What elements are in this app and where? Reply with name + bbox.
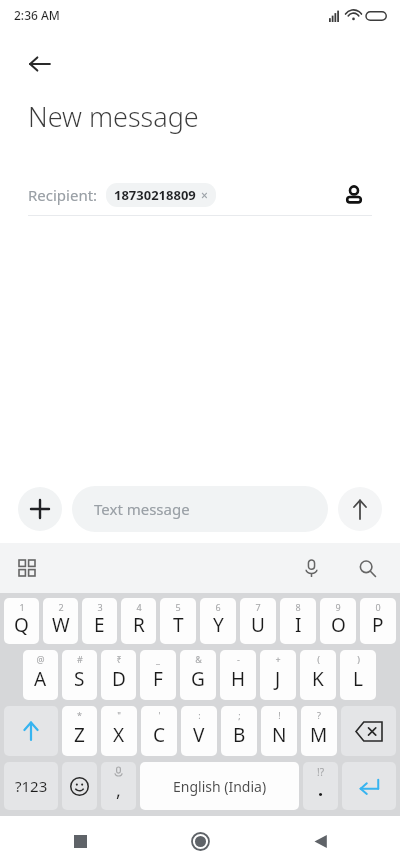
staticText: _ [156, 653, 160, 665]
button[interactable]: Search [350, 551, 384, 585]
button[interactable]: ₹ [101, 650, 136, 700]
staticText: * [77, 709, 82, 721]
button[interactable]: # [62, 650, 97, 700]
staticText: . [318, 777, 324, 802]
button[interactable]: Recents [60, 821, 100, 861]
staticText: E [94, 612, 105, 638]
button[interactable]: 7 [240, 598, 276, 644]
button[interactable]: 9 [320, 598, 356, 644]
button[interactable]: * [62, 706, 97, 756]
staticText: " [117, 709, 121, 721]
staticText: 5 [175, 601, 181, 613]
staticText: D [112, 666, 126, 692]
staticText: P [372, 612, 384, 638]
staticText: @ [36, 653, 45, 665]
button[interactable]: Choose contact [336, 177, 372, 213]
button[interactable]: ' [141, 706, 177, 756]
button[interactable]: 5 [160, 598, 196, 644]
staticText: V [193, 722, 205, 748]
staticText: A [34, 666, 47, 692]
button[interactable]: : [181, 706, 217, 756]
button[interactable]: 2 [43, 598, 78, 644]
button[interactable]: ? [301, 706, 337, 756]
staticText: & [195, 653, 202, 665]
staticText: 9 [335, 601, 341, 613]
button[interactable]: 3 [82, 598, 117, 644]
staticText: G [191, 666, 205, 692]
staticText: 8 [295, 601, 301, 613]
button[interactable]: @ [23, 650, 58, 700]
button[interactable]: ( [300, 650, 336, 700]
button[interactable]: Add attachment [18, 487, 62, 531]
button[interactable]: Send [338, 487, 382, 531]
button[interactable]: Voice input [294, 551, 328, 585]
staticText: B [233, 722, 246, 748]
staticText: : [198, 709, 201, 721]
button[interactable]: 0 [360, 598, 396, 644]
staticText: ) [357, 653, 360, 665]
staticText: J [275, 666, 281, 692]
staticText: 18730218809 [114, 186, 196, 204]
staticText: 2 [58, 601, 64, 613]
staticText: × [201, 187, 208, 203]
staticText: New message [28, 98, 199, 135]
button[interactable]: Home [180, 821, 220, 861]
staticText: Text message [94, 499, 190, 519]
staticText: # [77, 653, 83, 665]
button[interactable]: & [180, 650, 216, 700]
button[interactable] [342, 762, 396, 810]
button[interactable]: ) [340, 650, 376, 700]
button[interactable]: Keyboard menu [10, 551, 44, 585]
button[interactable]: + [260, 650, 296, 700]
staticText: 2:36 AM [14, 7, 60, 23]
staticText: 1 [19, 601, 25, 613]
button[interactable] [62, 762, 97, 810]
button[interactable]: ?123 [4, 762, 58, 810]
staticText: T [173, 612, 184, 638]
staticText: X [113, 722, 125, 748]
button[interactable]: 8 [280, 598, 316, 644]
staticText: H [231, 666, 246, 692]
staticText: K [312, 666, 324, 692]
staticText: + [275, 653, 281, 665]
staticText: English (India) [173, 777, 267, 796]
staticText: L [353, 666, 363, 692]
staticText: M [310, 722, 328, 748]
staticText: , [116, 778, 121, 803]
staticText: I [295, 612, 302, 638]
staticText: Y [213, 612, 224, 638]
button[interactable]: 4 [121, 598, 156, 644]
button[interactable]: Back [300, 821, 340, 861]
button[interactable]: - [220, 650, 256, 700]
staticText: U [251, 612, 265, 638]
staticText: Recipient: [28, 185, 98, 205]
staticText: ?123 [15, 776, 48, 796]
button[interactable] [341, 706, 396, 756]
staticText: 7 [255, 601, 261, 613]
button[interactable]: 1 [4, 598, 39, 644]
button[interactable]: English (India) [140, 762, 299, 810]
staticText: ( [317, 653, 320, 665]
button[interactable]: !? [303, 762, 338, 810]
staticText: F [153, 666, 163, 692]
button[interactable]: , [101, 762, 136, 810]
staticText: ! [278, 709, 281, 721]
staticText: W [52, 612, 70, 638]
staticText: Z [74, 722, 85, 748]
staticText: N [272, 722, 287, 748]
button[interactable]: " [101, 706, 137, 756]
button[interactable]: ; [221, 706, 257, 756]
button[interactable]: ! [261, 706, 297, 756]
staticText: 0 [375, 601, 381, 613]
staticText: S [74, 666, 85, 692]
button[interactable] [4, 706, 58, 756]
staticText: 3 [97, 601, 103, 613]
staticText: O [331, 612, 346, 638]
button[interactable]: _ [140, 650, 176, 700]
staticText: ' [158, 709, 161, 721]
button[interactable]: Back [18, 42, 62, 86]
staticText: Q [14, 612, 29, 638]
button[interactable]: 6 [200, 598, 236, 644]
button[interactable]: 18730218809 [106, 183, 216, 207]
button[interactable]: Text message [72, 486, 328, 532]
